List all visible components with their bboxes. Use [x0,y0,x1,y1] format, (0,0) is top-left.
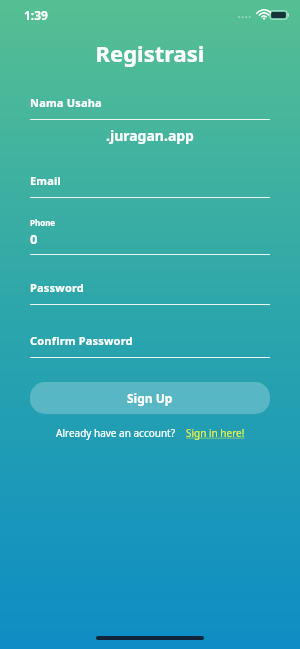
button[interactable]: Phone [30,217,270,255]
staticText: 0 [30,230,38,248]
staticText: Sign Up [127,390,173,406]
staticText: Sign in here! [186,426,245,440]
staticText: Confirm Password [30,333,133,348]
button[interactable]: Nama Usaha [30,95,270,120]
staticText: Phone [30,217,56,228]
button[interactable]: Password [30,280,270,305]
staticText: Registrasi [0,38,300,68]
staticText: Nama Usaha [30,95,102,110]
staticText: 1:39 [24,7,48,23]
staticText: Email [30,173,62,188]
button[interactable]: Email [30,173,270,198]
staticText: Already have an account? [56,426,176,440]
button[interactable]: Sign Up [30,382,270,414]
staticText: Password [30,280,85,295]
staticText: .juragan.app [30,126,270,145]
button[interactable]: Sign in here! [186,426,245,440]
button[interactable]: Confirm Password [30,333,270,358]
